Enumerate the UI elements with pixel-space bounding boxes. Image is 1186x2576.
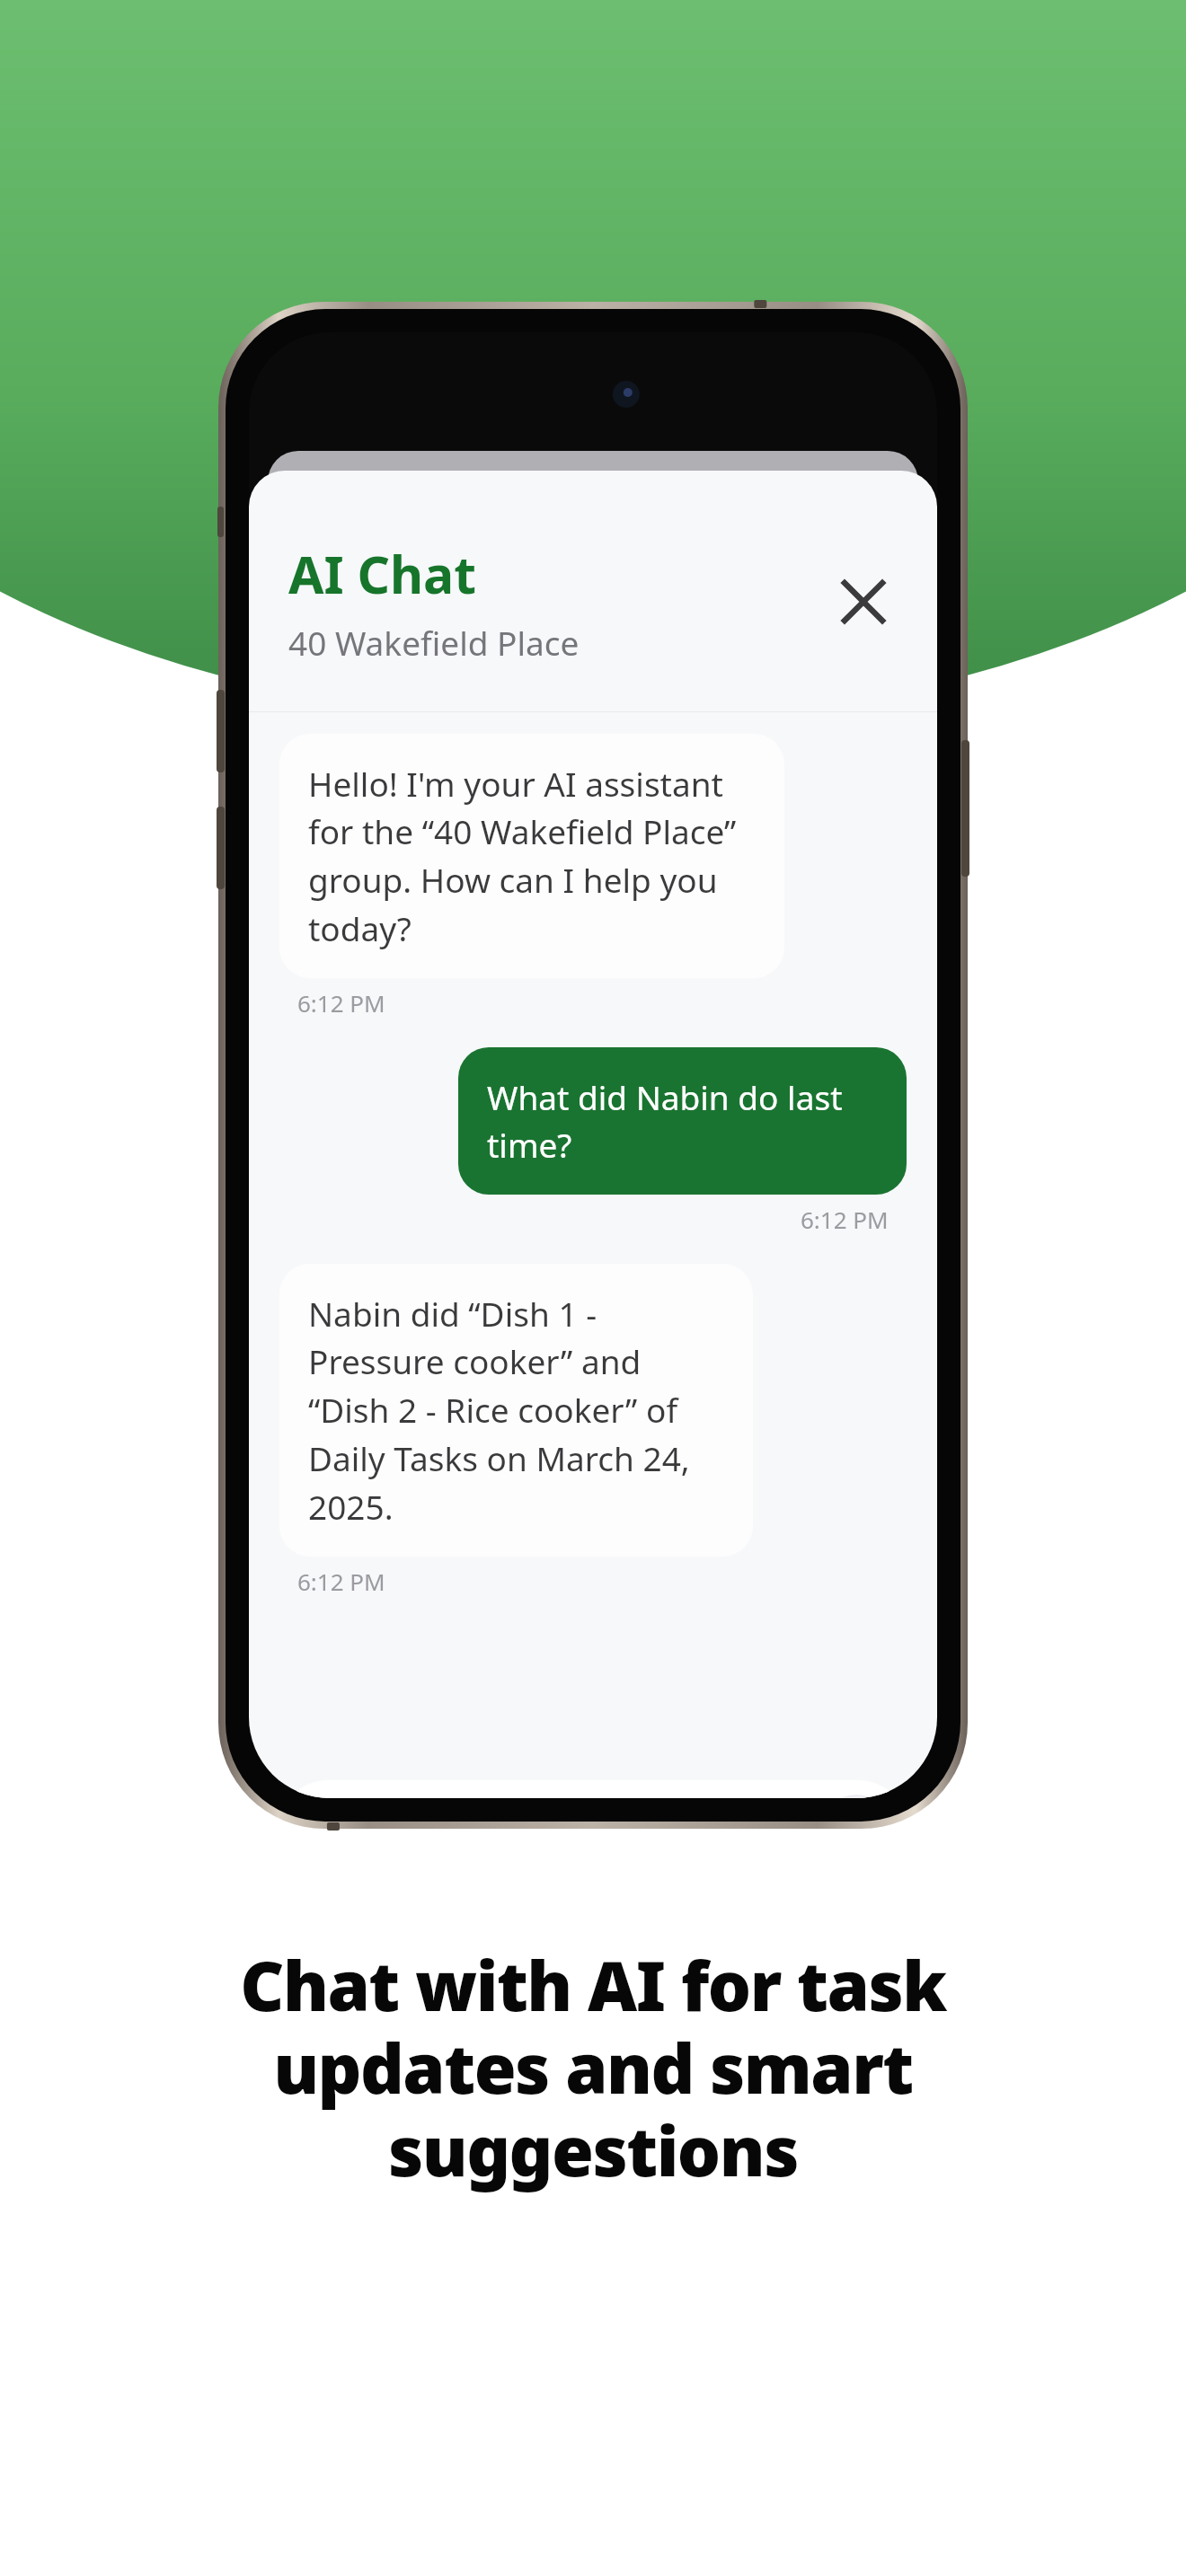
button[interactable]: Hello! I'm your AI assistant for the “40… <box>279 734 784 978</box>
staticText: Hello! I'm your AI assistant for the “40… <box>308 761 756 951</box>
staticText: What did Nabin do last time? <box>487 1074 878 1168</box>
button[interactable]: Nabin did “Dish 1 - Pressure cooker” and… <box>279 1264 753 1557</box>
button[interactable]: Send <box>820 1795 892 1798</box>
button[interactable]: Close <box>826 564 901 640</box>
staticText: 6:12 PM <box>801 1204 889 1235</box>
staticText: Chat with AI for task updates and smart … <box>63 1938 1123 2196</box>
staticText: Nabin did “Dish 1 - Pressure cooker” and… <box>308 1291 724 1530</box>
staticText: 6:12 PM <box>297 1566 385 1597</box>
button[interactable]: Type your message... <box>278 1780 908 1798</box>
staticText: AI Chat <box>288 539 476 609</box>
staticText: 6:12 PM <box>297 987 385 1019</box>
staticText: 40 Wakefield Place <box>288 620 580 665</box>
button[interactable]: What did Nabin do last time? <box>458 1047 907 1195</box>
